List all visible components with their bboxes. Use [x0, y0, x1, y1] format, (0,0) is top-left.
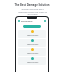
staticText: Feature item — [27, 34, 39, 37]
button[interactable]: Feature item — [18, 30, 46, 38]
button[interactable]: Feature item — [18, 48, 46, 56]
button[interactable]: Feature item — [18, 39, 46, 47]
staticText: Dashboard — [21, 20, 33, 23]
button[interactable]: Feature item — [18, 57, 46, 65]
staticText: Feature item — [27, 52, 39, 55]
button[interactable] — [23, 25, 41, 28]
staticText: The Best Damage Solution — [14, 3, 50, 7]
staticText: Feature item — [27, 61, 39, 64]
staticText: another featuring extra adaptable layout… — [17, 8, 48, 15]
staticText: Feature item — [27, 43, 39, 46]
